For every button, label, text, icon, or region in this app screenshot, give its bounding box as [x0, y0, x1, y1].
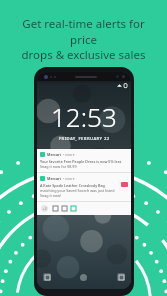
button[interactable]: Unlock — [80, 274, 87, 281]
staticText: +3 — [43, 207, 47, 211]
button[interactable]: Quick setting 3 — [71, 206, 76, 211]
staticText: Mercari — [47, 152, 61, 157]
staticText: FRIDAY, FEBRUARY 22 — [59, 136, 110, 142]
staticText: Mercari — [47, 176, 61, 181]
staticText: • now ▾ — [63, 152, 75, 157]
button[interactable]: Phone — [43, 273, 51, 281]
button[interactable]: Camera — [117, 273, 125, 281]
button[interactable]: Quick setting 2 — [62, 206, 67, 211]
staticText: 12:53 — [51, 99, 117, 134]
staticText: Snag it now for $8.99 — [40, 164, 77, 169]
staticText: Snag it now! — [40, 193, 62, 198]
staticText: Get real-time alerts for price drops & e… — [10, 16, 157, 62]
button[interactable]: Quick setting 1 — [53, 206, 58, 211]
button[interactable]: Mercari — [37, 149, 131, 172]
staticText: Your favorite Free People Dress is now 5… — [40, 159, 122, 164]
staticText: matching your Saved Search was just list… — [40, 188, 115, 193]
staticText: A Kate Spade Leather Crossbody Bag — [40, 183, 105, 188]
button[interactable]: Mercari — [37, 173, 131, 201]
button[interactable]: Expand notifications — [41, 205, 48, 212]
staticText: • now ▾ — [63, 176, 75, 181]
